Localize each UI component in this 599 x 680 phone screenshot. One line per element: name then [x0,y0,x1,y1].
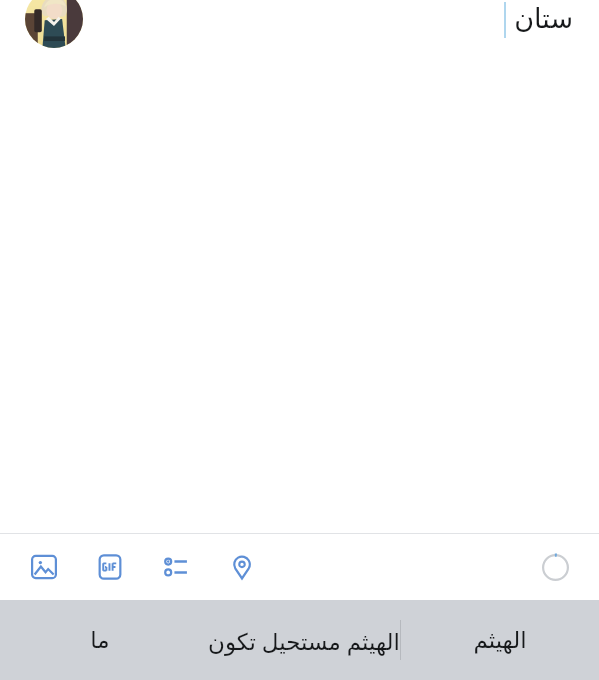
staticText: ما [90,627,110,654]
staticText: الهيثم مستحيل تكون [207,625,400,656]
button[interactable]: Character count [533,545,577,589]
button[interactable]: Add photo [22,545,66,589]
staticText: الهيثم [473,627,527,654]
button[interactable]: الهيثم [400,600,599,680]
staticText: ستان [514,3,573,34]
button[interactable]: Add GIF [88,545,132,589]
button[interactable]: Profile picture [25,0,83,48]
button[interactable]: Add poll [154,545,198,589]
button[interactable]: ستان [504,0,573,36]
button[interactable]: Add location [220,545,264,589]
button[interactable]: ما [0,600,200,680]
button[interactable]: الهيثم مستحيل تكون [200,600,400,680]
